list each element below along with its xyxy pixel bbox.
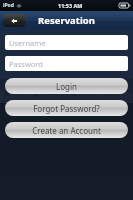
staticText: Create an Account [32, 125, 101, 136]
button[interactable]: Login [5, 78, 128, 94]
staticText: Password [9, 59, 43, 69]
button[interactable]: Create an Account [5, 122, 128, 138]
button[interactable]: Username [5, 35, 128, 50]
staticText: Reservation [38, 14, 95, 27]
button[interactable]: Password [5, 56, 128, 71]
staticText: Login [56, 81, 77, 92]
button[interactable]: Back [3, 14, 25, 27]
staticText: Forgot Password? [33, 103, 100, 114]
button[interactable]: Forgot Password? [5, 100, 128, 116]
staticText: 11:53 AM [58, 2, 83, 9]
staticText: iPod [3, 2, 14, 9]
staticText: Username [9, 38, 46, 48]
